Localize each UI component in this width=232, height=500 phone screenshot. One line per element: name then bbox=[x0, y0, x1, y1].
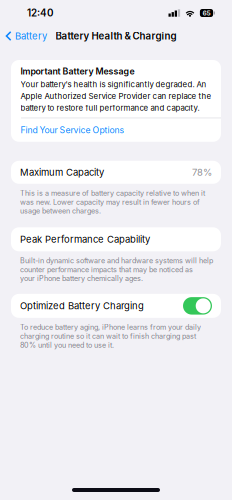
staticText: Your battery's health is significantly d… bbox=[20, 80, 211, 113]
staticText: Find Your Service Options bbox=[20, 125, 124, 135]
staticText: 78% bbox=[192, 167, 212, 178]
staticText: Maximum Capacity bbox=[20, 167, 104, 178]
staticText: Battery Health & Charging bbox=[55, 30, 176, 42]
staticText: 65 bbox=[202, 9, 210, 17]
staticText: Built-in dynamic software and hardware s… bbox=[20, 256, 213, 283]
staticText: This is a measure of battery capacity re… bbox=[20, 189, 205, 215]
button[interactable]: Find Your Service Options bbox=[11, 118, 221, 142]
staticText: Optimized Battery Charging bbox=[20, 300, 144, 312]
staticText: Battery bbox=[15, 30, 47, 42]
staticText: 12:40 bbox=[27, 7, 54, 19]
button[interactable]: Optimized Battery Charging bbox=[11, 294, 221, 318]
staticText: To reduce battery aging, iPhone learns f… bbox=[20, 323, 201, 349]
staticText: Important Battery Message bbox=[20, 66, 134, 77]
staticText: Peak Performance Capability bbox=[20, 234, 150, 245]
button[interactable]: Battery bbox=[0, 26, 52, 45]
